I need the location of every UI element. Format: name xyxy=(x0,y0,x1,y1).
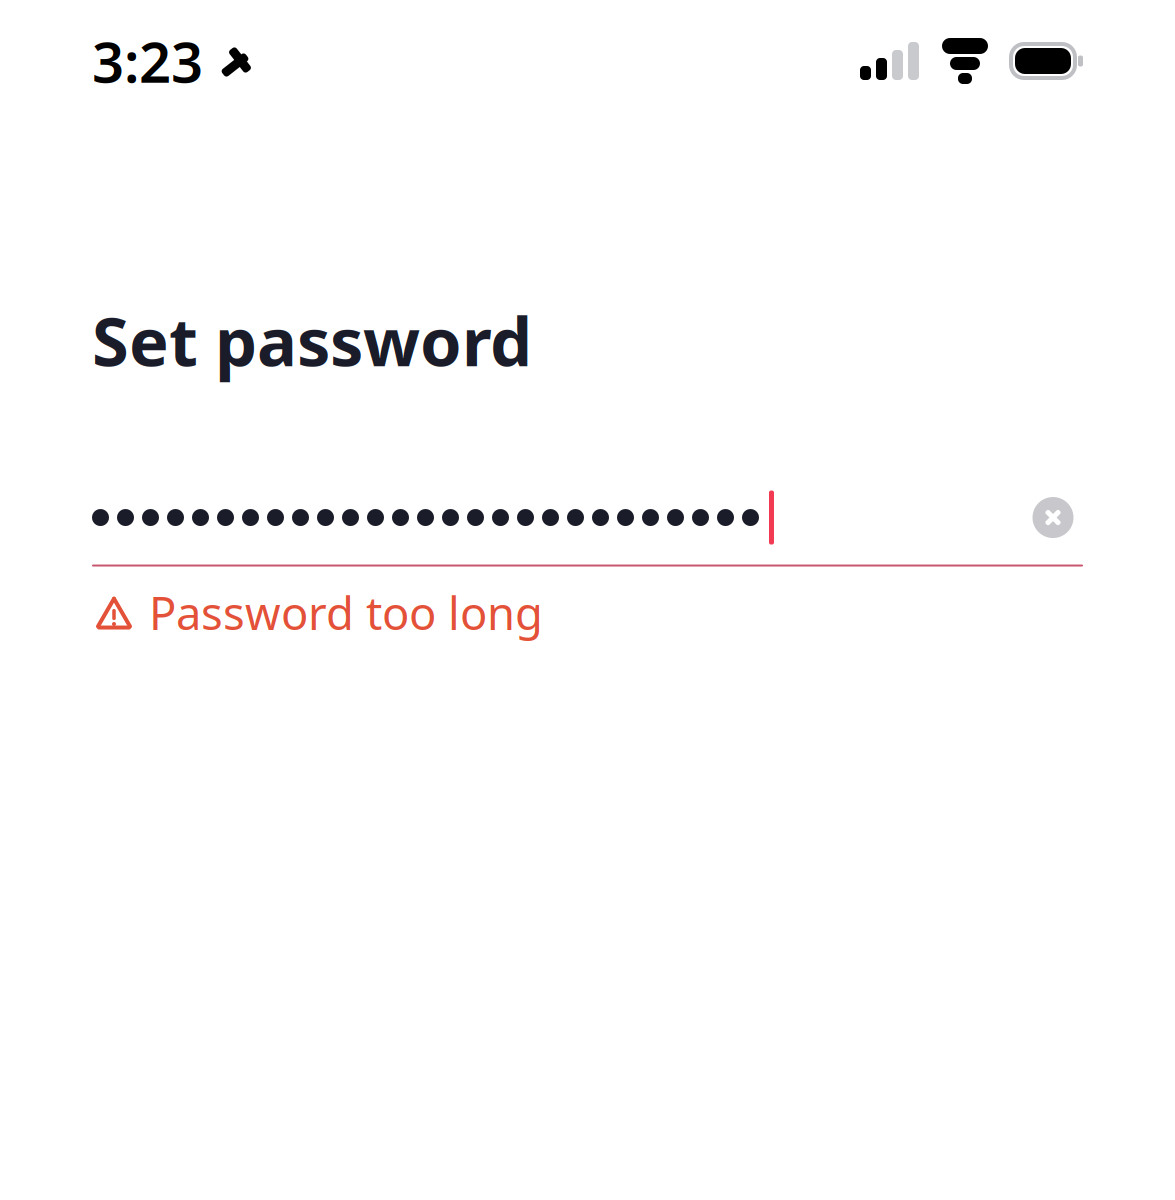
staticText: Set password xyxy=(92,296,532,384)
staticText: Password too long xyxy=(149,582,543,643)
staticText: 3:23 xyxy=(92,24,203,98)
button[interactable]: Clear text xyxy=(1023,487,1083,547)
